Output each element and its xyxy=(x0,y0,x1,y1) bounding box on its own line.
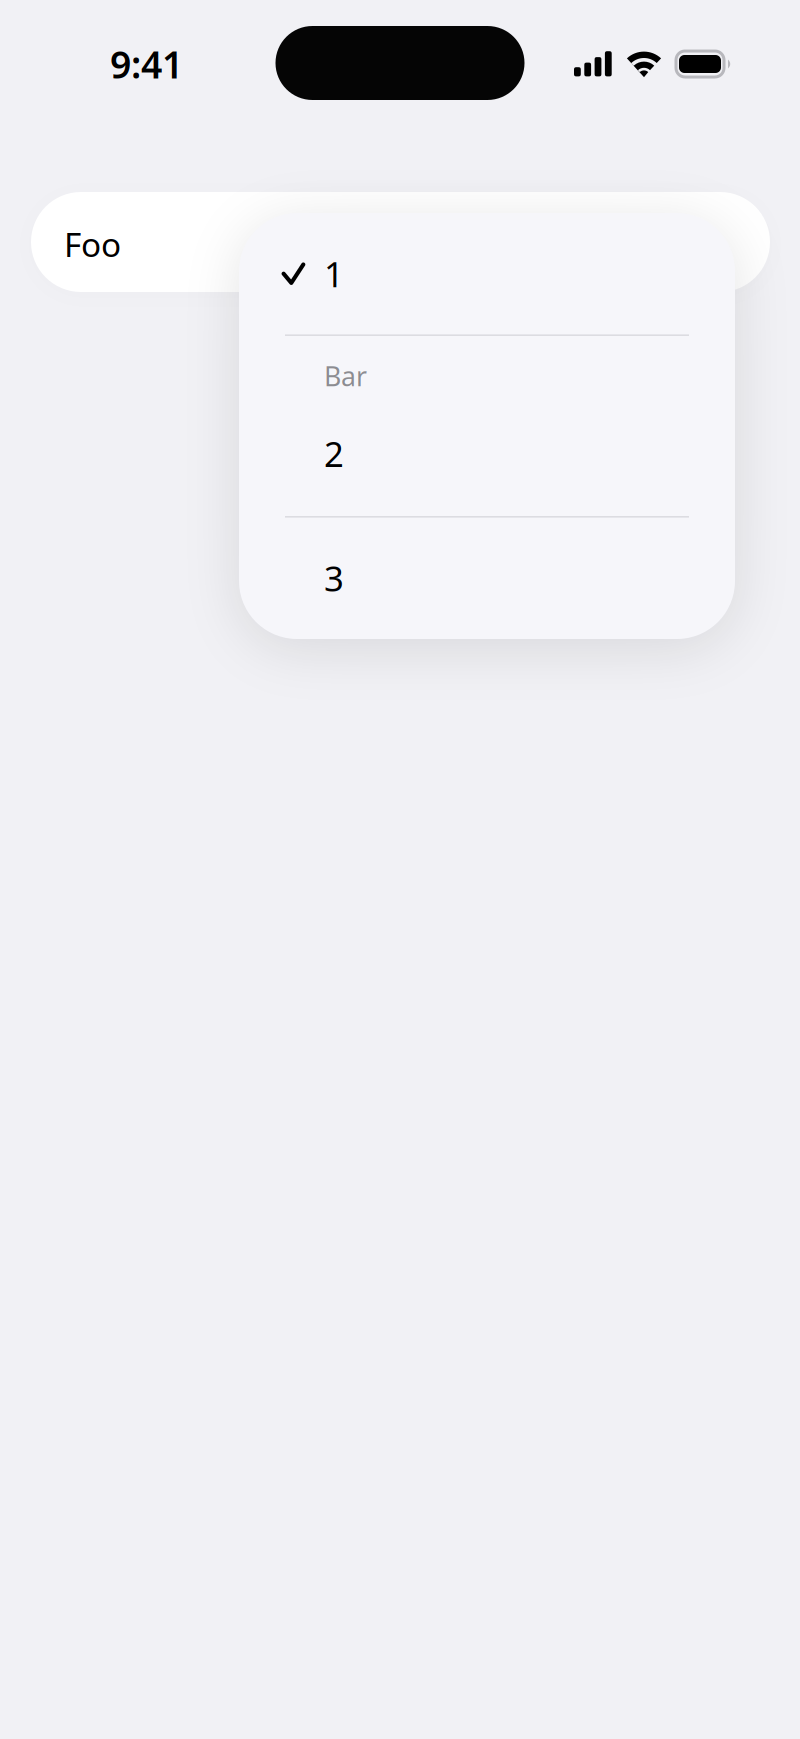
button[interactable]: 2 xyxy=(239,391,735,516)
button[interactable]: 3 xyxy=(239,518,735,639)
staticText: Foo xyxy=(64,222,121,266)
staticText: 2 xyxy=(324,430,344,476)
staticText: 3 xyxy=(324,555,344,601)
staticText: 9:41 xyxy=(110,39,183,89)
button[interactable]: Foo xyxy=(31,192,770,292)
button[interactable]: 1 xyxy=(239,213,735,334)
staticText: 1 xyxy=(324,251,344,297)
staticText: Bar xyxy=(324,358,367,394)
